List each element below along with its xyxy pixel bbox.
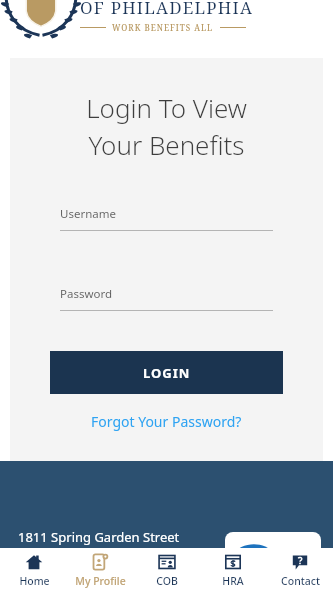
button[interactable]: Username bbox=[60, 206, 273, 231]
button[interactable]: Home bbox=[1, 551, 67, 590]
staticText: OF PHILADELPHIA bbox=[80, 0, 254, 19]
staticText: COB bbox=[156, 574, 178, 588]
staticText: 1811 Spring Garden Street bbox=[18, 528, 180, 546]
button[interactable]: HRA bbox=[200, 551, 266, 590]
staticText: Username bbox=[60, 206, 116, 222]
staticText: WORK BENEFITS ALL bbox=[112, 22, 214, 33]
button[interactable]: Contact bbox=[267, 551, 333, 590]
button[interactable]: My Profile bbox=[67, 551, 133, 590]
button[interactable]: Password bbox=[60, 286, 273, 311]
button[interactable]: COB bbox=[134, 551, 200, 590]
staticText: Password bbox=[60, 286, 113, 302]
staticText: LOGIN bbox=[143, 364, 191, 382]
staticText: Your Benefits bbox=[88, 127, 245, 162]
staticText: Contact bbox=[281, 574, 320, 588]
staticText: HRA bbox=[222, 574, 244, 588]
staticText: Login To View bbox=[86, 90, 247, 125]
button[interactable]: Forgot Your Password? bbox=[83, 410, 250, 433]
staticText: Home bbox=[19, 574, 50, 588]
button[interactable]: LOGIN bbox=[50, 351, 283, 394]
staticText: My Profile bbox=[75, 574, 126, 588]
staticText: Forgot Your Password? bbox=[91, 412, 242, 431]
